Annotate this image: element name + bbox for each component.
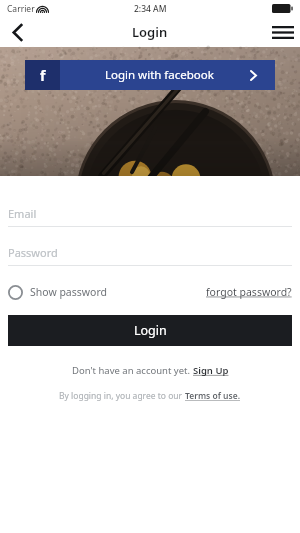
- staticText: forgot password?: [206, 285, 292, 299]
- staticText: Don't have an account yet.: [72, 364, 193, 377]
- button[interactable]: Show password: [8, 278, 206, 306]
- button[interactable]: Terms of use.: [185, 390, 241, 402]
- staticText: Carrier: [7, 3, 35, 15]
- button[interactable]: forgot password?: [206, 278, 292, 306]
- staticText: 2:34 AM: [134, 3, 167, 15]
- staticText: Password: [8, 245, 58, 260]
- staticText: Login: [132, 23, 168, 41]
- button[interactable]: Back: [0, 17, 34, 47]
- button[interactable]: Login: [8, 315, 292, 346]
- button[interactable]: Menu: [266, 17, 300, 47]
- staticText: Sign Up: [193, 364, 229, 377]
- button[interactable]: Email: [8, 206, 292, 227]
- staticText: Show password: [30, 285, 107, 299]
- staticText: By logging in, you agree to our: [59, 390, 185, 402]
- staticText: Login: [134, 322, 167, 339]
- staticText: Terms of use.: [185, 390, 241, 402]
- staticText: Login with facebook: [105, 67, 214, 83]
- button[interactable]: Sign Up: [193, 364, 229, 377]
- button[interactable]: f: [25, 60, 275, 90]
- staticText: Email: [8, 206, 37, 221]
- button[interactable]: Password: [8, 245, 292, 266]
- staticText: f: [40, 66, 46, 85]
